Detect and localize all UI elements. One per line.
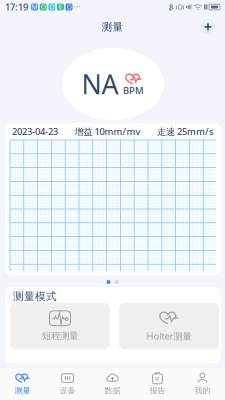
staticText: 测量 — [101, 20, 123, 33]
button[interactable]: 数据 — [90, 368, 135, 400]
button[interactable]: 短程测量 — [10, 303, 110, 349]
button[interactable]: 测量 — [0, 368, 45, 400]
staticText: 短程测量 — [42, 330, 78, 342]
staticText: M — [32, 3, 38, 11]
staticText: 测量 — [14, 386, 30, 395]
staticText: 我的 — [194, 386, 210, 395]
staticText: 设备 — [59, 386, 75, 395]
staticText: NA — [81, 66, 118, 102]
staticText: E — [58, 3, 62, 11]
staticText: ··· — [74, 2, 80, 12]
button[interactable]: Add — [197, 16, 219, 38]
staticText: 测量模式 — [13, 290, 57, 303]
staticText: BPM — [123, 84, 144, 96]
staticText: 2023-04-23 — [12, 125, 58, 138]
staticText: 走速 25mm/s — [157, 125, 214, 138]
staticText: Holter测量 — [146, 330, 191, 342]
button[interactable]: 我的 — [180, 368, 225, 400]
staticText: 数据 — [104, 386, 120, 395]
staticText: O — [49, 3, 54, 11]
staticText: B — [203, 3, 207, 11]
staticText: O — [41, 3, 46, 11]
staticText: 报告 — [149, 386, 165, 395]
button[interactable]: 设备 — [45, 368, 90, 400]
button[interactable]: Holter测量 — [119, 303, 219, 349]
staticText: O — [66, 3, 71, 11]
staticText: 增益 10mm/mv — [74, 125, 140, 138]
staticText: 17:19 — [5, 1, 28, 13]
button[interactable]: 报告 — [135, 368, 180, 400]
staticText: ıOı — [175, 3, 184, 11]
